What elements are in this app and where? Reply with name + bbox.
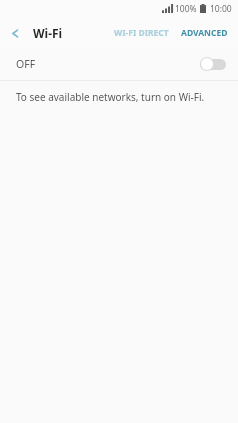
button[interactable]: Back [0, 18, 30, 48]
button[interactable]: ADVANCED [175, 21, 238, 45]
button[interactable]: OFF [0, 48, 238, 80]
staticText: 10:00 [210, 3, 232, 15]
staticText: OFF [16, 57, 36, 71]
button[interactable]: WI-FI DIRECT [108, 21, 175, 45]
staticText: WI-FI DIRECT [114, 27, 169, 39]
staticText: 100% [175, 3, 197, 15]
staticText: To see available networks, turn on Wi-Fi… [16, 90, 205, 104]
staticText: ADVANCED [181, 27, 228, 39]
staticText: Wi-Fi [33, 25, 63, 41]
